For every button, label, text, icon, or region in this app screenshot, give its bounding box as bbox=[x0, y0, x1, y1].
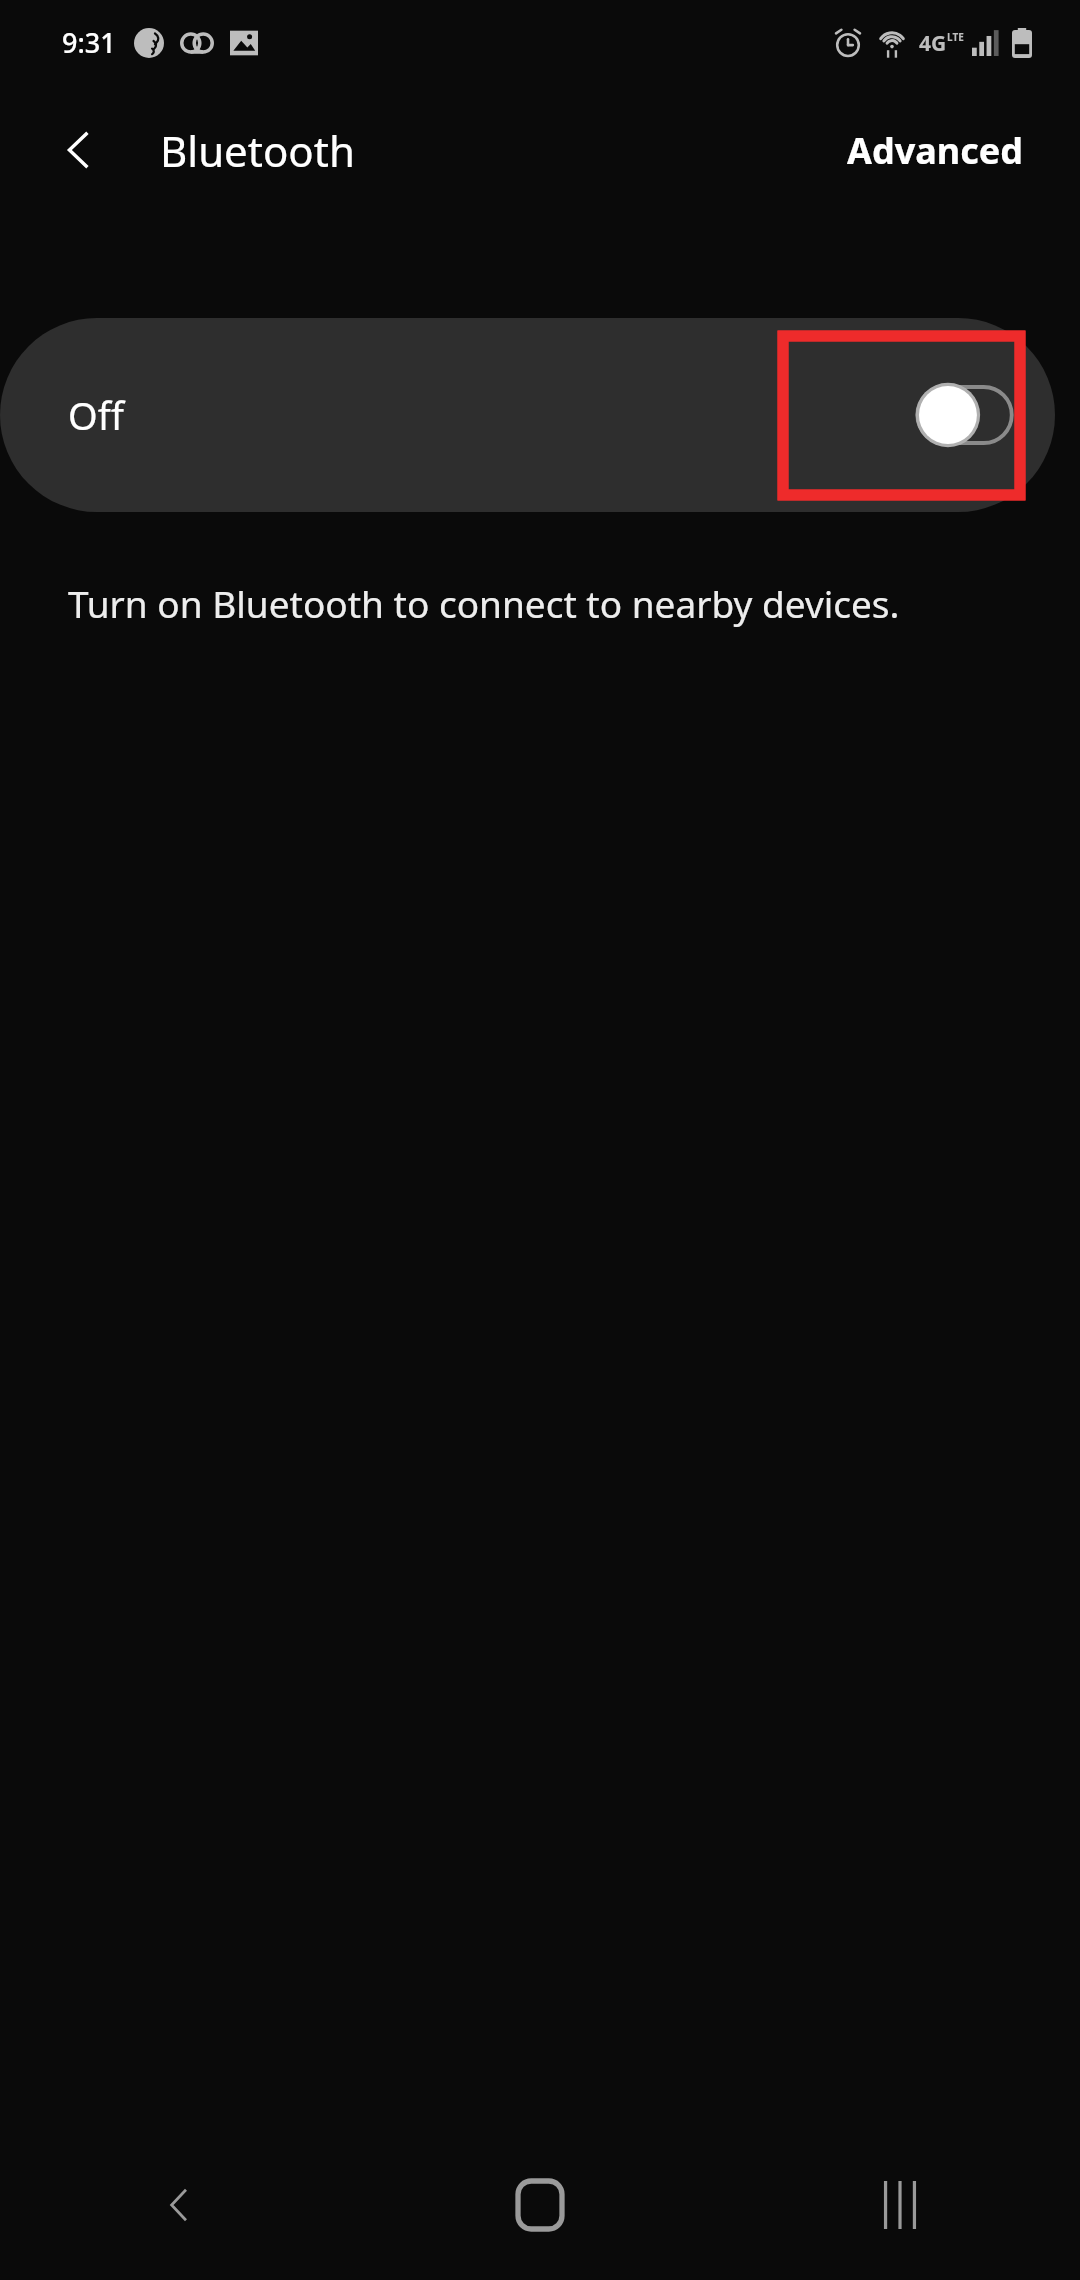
staticText: 9:31 bbox=[62, 24, 116, 61]
button[interactable]: Recent apps bbox=[720, 2130, 1080, 2280]
staticText: 4G bbox=[919, 29, 947, 58]
button[interactable]: Home bbox=[360, 2130, 720, 2280]
button[interactable]: Advanced bbox=[821, 110, 1050, 191]
staticText: Off bbox=[68, 389, 124, 441]
button[interactable]: Back bbox=[0, 2130, 360, 2280]
button[interactable]: Back bbox=[40, 111, 118, 189]
staticText: Bluetooth bbox=[160, 122, 355, 179]
button[interactable]: Bluetooth on/off bbox=[902, 380, 1020, 450]
button[interactable]: Off bbox=[0, 318, 1055, 512]
staticText: Advanced bbox=[847, 126, 1024, 175]
staticText: Turn on Bluetooth to connect to nearby d… bbox=[68, 578, 900, 628]
staticText: LTE bbox=[947, 30, 964, 44]
